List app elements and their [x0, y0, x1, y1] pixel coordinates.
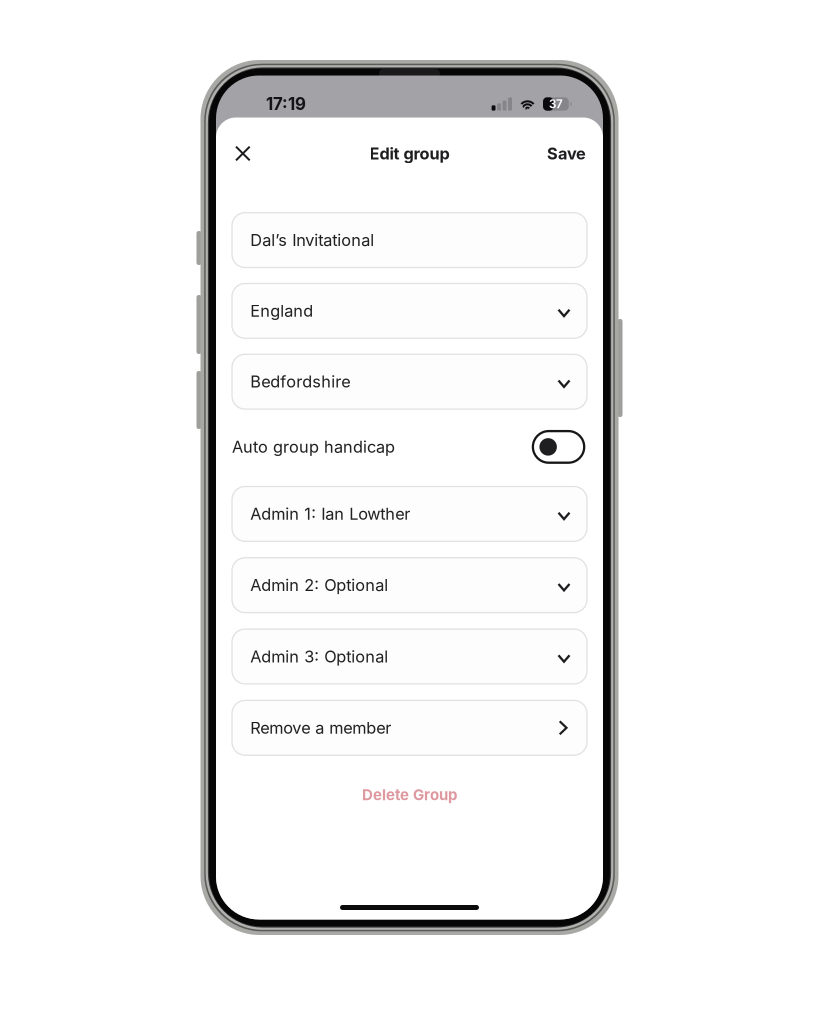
- staticText: Remove a member: [250, 718, 391, 738]
- staticText: 37: [549, 97, 563, 111]
- staticText: Admin 3: Optional: [250, 647, 388, 666]
- button[interactable]: Remove a member: [232, 700, 587, 755]
- button[interactable]: Admin 3: Optional: [232, 629, 587, 684]
- button[interactable]: Admin 2: Optional: [232, 558, 587, 613]
- staticText: 17:19: [266, 94, 306, 114]
- button[interactable]: Dal’s Invitational: [232, 213, 587, 267]
- button[interactable]: Save: [531, 132, 603, 175]
- staticText: Bedfordshire: [250, 372, 350, 392]
- button[interactable]: Delete Group: [309, 780, 509, 810]
- staticText: Save: [547, 144, 586, 163]
- button[interactable]: England: [232, 283, 587, 338]
- staticText: Dal’s Invitational: [250, 230, 374, 250]
- staticText: Edit group: [369, 144, 449, 163]
- staticText: England: [250, 301, 313, 321]
- button[interactable]: Close: [216, 135, 266, 172]
- button[interactable]: Admin 1: Ian Lowther: [232, 486, 587, 541]
- staticText: Admin 1: Ian Lowther: [250, 504, 410, 524]
- staticText: Admin 2: Optional: [250, 575, 388, 595]
- button[interactable]: Bedfordshire: [232, 354, 587, 409]
- staticText: Auto group handicap: [232, 437, 395, 457]
- button[interactable]: Auto group handicap: [533, 431, 584, 463]
- staticText: Delete Group: [362, 786, 457, 804]
